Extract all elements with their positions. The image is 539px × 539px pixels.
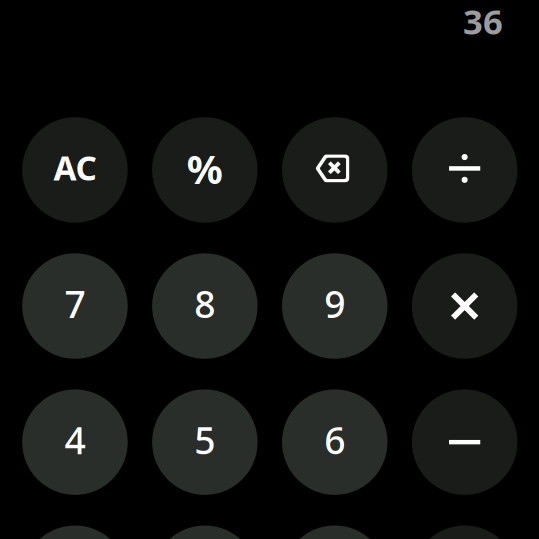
button[interactable]: 3 [282, 525, 387, 539]
staticText: 6 [324, 415, 345, 464]
button[interactable]: 5 [152, 389, 258, 495]
button[interactable]: Plus [412, 525, 517, 539]
button[interactable]: Multiply [412, 253, 517, 359]
staticText: 5 [194, 415, 215, 464]
staticText: 36 [463, 0, 503, 44]
button[interactable]: AC [22, 117, 128, 223]
button[interactable]: Minus [412, 389, 517, 495]
button[interactable]: Divide [412, 117, 517, 223]
staticText: 9 [324, 279, 345, 328]
button[interactable]: 9 [282, 253, 387, 359]
staticText: 7 [64, 279, 85, 328]
button[interactable]: 8 [152, 253, 258, 359]
staticText: AC [53, 145, 96, 190]
button[interactable]: 4 [22, 389, 128, 495]
button[interactable]: 7 [22, 253, 128, 359]
button[interactable]: 2 [152, 525, 258, 539]
button[interactable]: % [152, 117, 258, 223]
staticText: % [187, 142, 223, 195]
staticText: 4 [64, 415, 85, 464]
button[interactable]: Delete [282, 117, 387, 223]
button[interactable]: 1 [22, 525, 128, 539]
staticText: 8 [194, 279, 215, 328]
button[interactable]: 6 [282, 389, 387, 495]
